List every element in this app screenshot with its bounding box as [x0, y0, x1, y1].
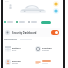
button[interactable]: Profile: [8, 4, 13, 9]
staticText: Position: [42, 46, 52, 49]
button[interactable]: Vehicle stat: [16, 19, 25, 25]
staticText: 82%: [12, 49, 17, 52]
button[interactable]: Backup: [3, 56, 31, 67]
staticText: Parked: [42, 49, 49, 52]
button[interactable]: Battery: [3, 43, 31, 54]
button[interactable]: [33, 56, 61, 67]
staticText: Backup: [12, 59, 21, 62]
staticText: 9:41: [5, 0, 9, 3]
button[interactable]: Security Dashboard: [3, 28, 61, 37]
staticText: Security Dashboard: [12, 31, 37, 34]
button[interactable]: Heating: [53, 1, 59, 7]
button[interactable]: Cooling: [53, 8, 59, 14]
button[interactable]: Vehicle stat: [41, 19, 51, 25]
button[interactable]: Position: [33, 43, 61, 54]
staticText: MONITORING: [4, 38, 17, 41]
button[interactable]: Security toggle: [51, 30, 59, 35]
button[interactable]: Vehicle stat: [28, 19, 37, 25]
button[interactable]: Vehicle stat: [4, 19, 13, 25]
staticText: Battery: [12, 46, 21, 49]
staticText: Ready: [12, 62, 19, 65]
